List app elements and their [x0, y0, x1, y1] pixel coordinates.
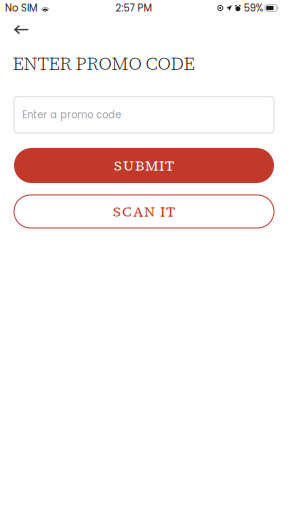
- staticText: 2:57 PM: [115, 1, 151, 15]
- staticText: ENTER PROMO CODE: [12, 51, 194, 76]
- staticText: No SIM: [5, 1, 37, 15]
- staticText: S C A N I T: [113, 202, 175, 221]
- button[interactable]: Back: [0, 17, 42, 42]
- staticText: 59%: [244, 1, 263, 15]
- button[interactable]: Enter a promo code: [14, 97, 274, 133]
- staticText: Enter a promo code: [22, 108, 121, 122]
- staticText: S U B M I T: [114, 156, 174, 175]
- button[interactable]: S U B M I T: [14, 148, 274, 183]
- button[interactable]: S C A N I T: [14, 195, 274, 228]
